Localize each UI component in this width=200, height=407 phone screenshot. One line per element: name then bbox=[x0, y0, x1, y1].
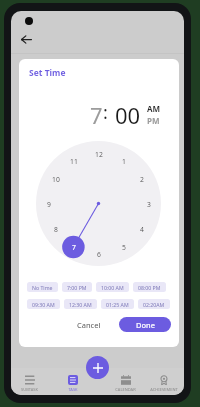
button[interactable]: 7 bbox=[90, 100, 103, 130]
staticText: Cancel bbox=[77, 320, 101, 330]
button[interactable]: 10 bbox=[48, 171, 64, 187]
staticText: 10 bbox=[52, 175, 60, 184]
button[interactable]: 12 bbox=[91, 146, 107, 162]
staticText: 9 bbox=[47, 200, 51, 209]
button[interactable]: 09:30 AM bbox=[27, 299, 60, 309]
button[interactable]: 5 bbox=[116, 239, 132, 255]
staticText: 09:30 AM bbox=[32, 301, 55, 308]
button[interactable]: 6 bbox=[91, 246, 107, 262]
button[interactable]: TASK bbox=[51, 372, 95, 394]
staticText: 12 bbox=[95, 150, 103, 159]
staticText: ACHIEVEMENT bbox=[150, 387, 178, 392]
button[interactable]: Add new task bbox=[86, 356, 109, 379]
staticText: No Time bbox=[32, 284, 53, 291]
button[interactable]: 7 bbox=[66, 239, 82, 255]
button[interactable]: Done bbox=[119, 317, 171, 332]
button[interactable]: 9 bbox=[41, 196, 57, 212]
staticText: 4 bbox=[140, 225, 144, 234]
staticText: 7 bbox=[72, 243, 76, 252]
staticText: 02:20AM bbox=[143, 301, 165, 308]
staticText: Done bbox=[136, 320, 155, 330]
button[interactable]: 2 bbox=[134, 171, 150, 187]
button[interactable]: 10:00 AM bbox=[96, 282, 129, 292]
button[interactable]: 12:30 AM bbox=[64, 299, 97, 309]
staticText: 8 bbox=[54, 225, 58, 234]
staticText: 10:00 AM bbox=[101, 284, 124, 291]
button[interactable]: AM bbox=[147, 103, 161, 114]
button[interactable]: Cancel bbox=[63, 317, 114, 332]
button[interactable]: 00 bbox=[115, 100, 141, 130]
button[interactable]: Back bbox=[19, 32, 33, 46]
staticText: 08:00 PM bbox=[138, 284, 161, 291]
button[interactable]: ACHIEVEMENT bbox=[142, 372, 184, 394]
staticText: TASK bbox=[68, 387, 78, 392]
staticText: 1 bbox=[122, 157, 126, 166]
staticText: 7:00 PM bbox=[67, 284, 87, 291]
staticText: 6 bbox=[97, 250, 101, 259]
staticText: : bbox=[103, 100, 108, 125]
staticText: 12:30 AM bbox=[69, 301, 92, 308]
button[interactable]: 3 bbox=[141, 196, 157, 212]
staticText: 5 bbox=[122, 243, 126, 252]
staticText: 11 bbox=[70, 157, 78, 166]
button[interactable]: 01:25 AM bbox=[101, 299, 134, 309]
button[interactable]: No Time bbox=[27, 282, 58, 292]
staticText: 3 bbox=[147, 200, 151, 209]
button[interactable]: SUBTASK bbox=[11, 372, 51, 394]
button[interactable]: PM bbox=[147, 115, 160, 126]
staticText: CALENDAR bbox=[115, 387, 136, 392]
button[interactable]: 02:20AM bbox=[138, 299, 170, 309]
button[interactable]: Set Time bbox=[29, 67, 66, 79]
button[interactable]: 11 bbox=[66, 153, 82, 169]
button[interactable]: 08:00 PM bbox=[133, 282, 166, 292]
button[interactable]: 4 bbox=[134, 221, 150, 237]
button[interactable]: 8 bbox=[48, 221, 64, 237]
button[interactable]: CALENDAR bbox=[103, 372, 147, 394]
staticText: 01:25 AM bbox=[106, 301, 129, 308]
staticText: 2 bbox=[140, 175, 144, 184]
button[interactable]: 1 bbox=[116, 153, 132, 169]
button[interactable]: 7:00 PM bbox=[62, 282, 92, 292]
staticText: SUBTASK bbox=[21, 387, 38, 392]
